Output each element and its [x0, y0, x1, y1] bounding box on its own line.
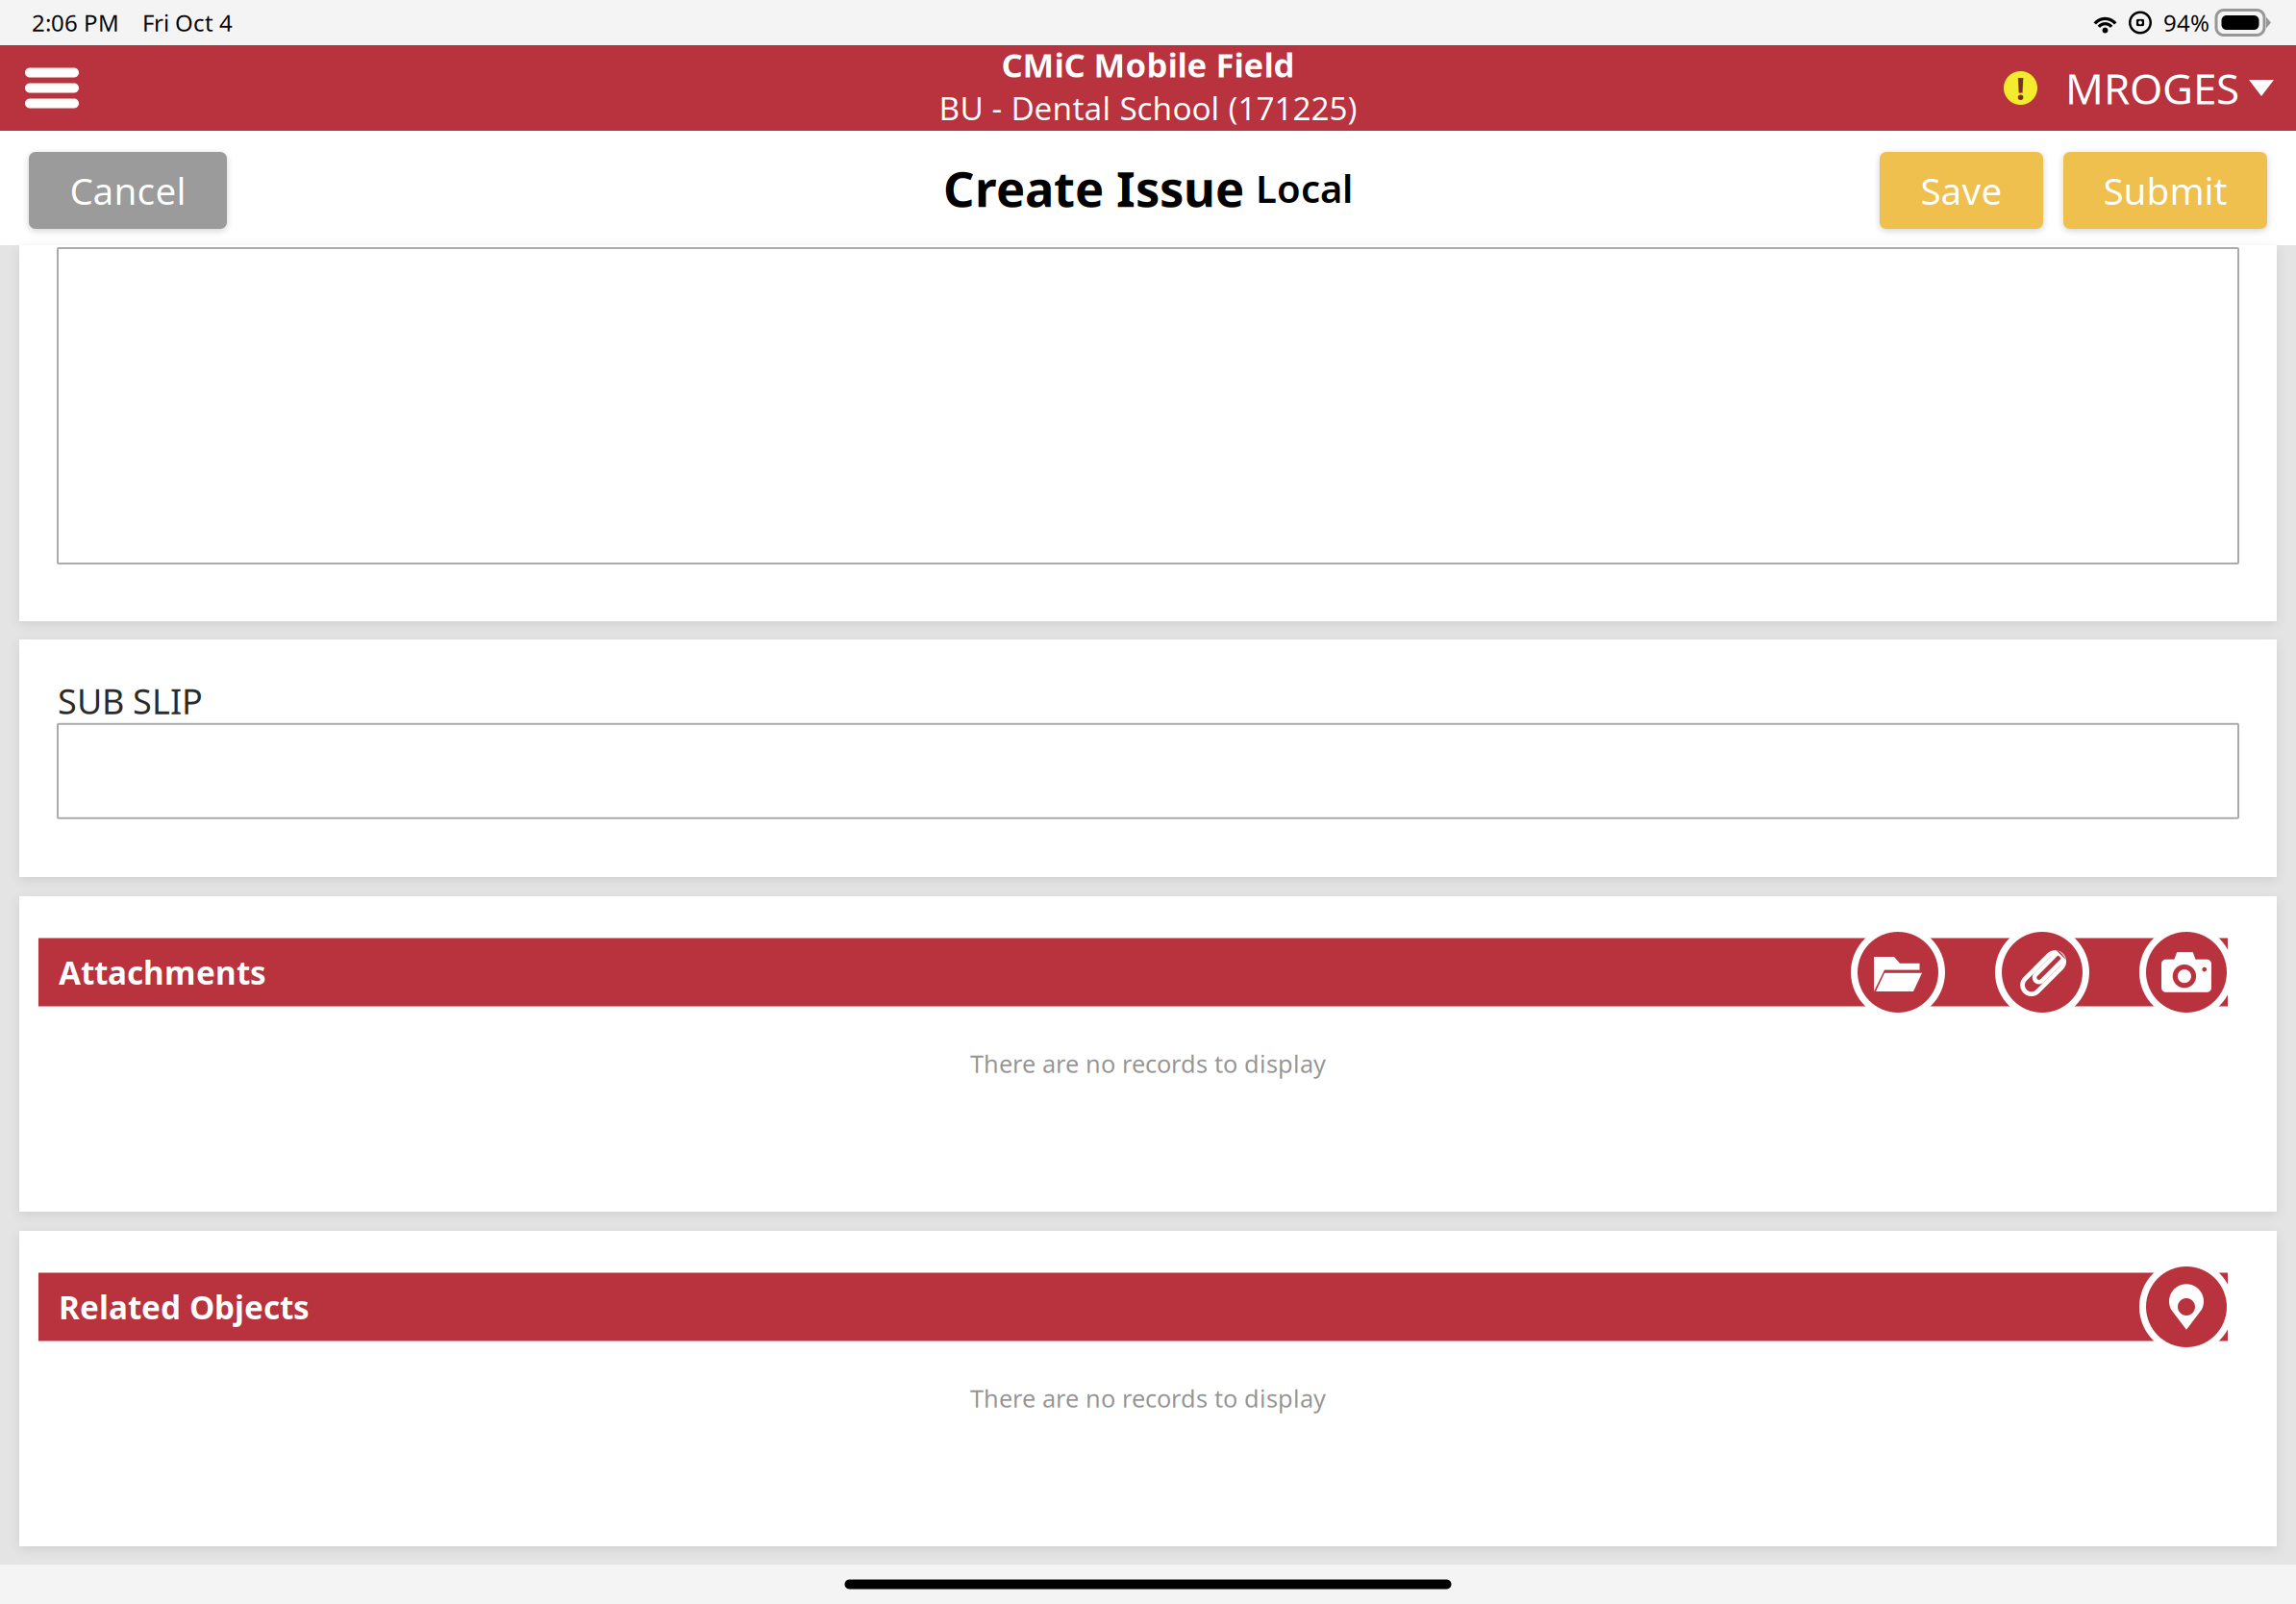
staticText: Save	[1921, 166, 2002, 215]
staticText: Fri Oct 4	[142, 7, 233, 38]
button[interactable]: Submit	[2063, 152, 2267, 229]
button[interactable]: Browse files	[1851, 925, 1945, 1019]
button[interactable]: Menu	[9, 45, 95, 131]
staticText: BU - Dental School (171225)	[939, 87, 1357, 129]
staticText: SUB SLIP	[58, 678, 203, 724]
button[interactable]: Description	[58, 248, 2238, 564]
staticText: Submit	[2103, 166, 2227, 215]
staticText: There are no records to display	[970, 1382, 1326, 1414]
staticText: 2:06 PM	[32, 7, 119, 38]
button[interactable]: Save	[1880, 152, 2043, 229]
staticText: Cancel	[70, 166, 186, 215]
button[interactable]: Cancel	[29, 152, 227, 229]
button[interactable]: Take photo	[2139, 925, 2234, 1019]
button[interactable]: Attach file	[1995, 925, 2089, 1019]
button[interactable]: Sub slip	[58, 724, 2238, 818]
staticText: Related Objects	[59, 1286, 310, 1328]
staticText: Create Issue	[943, 156, 1244, 220]
staticText: CMiC Mobile Field	[1001, 42, 1295, 87]
staticText: Attachments	[59, 951, 266, 994]
button[interactable]: Location	[2139, 1260, 2234, 1354]
button[interactable]: Account menu	[2004, 45, 2274, 131]
staticText: !	[2016, 68, 2025, 108]
staticText: Local	[1256, 162, 1353, 213]
staticText: MROGES	[2065, 60, 2239, 116]
staticText: There are no records to display	[970, 1047, 1326, 1080]
staticText: 94%	[2163, 7, 2209, 38]
